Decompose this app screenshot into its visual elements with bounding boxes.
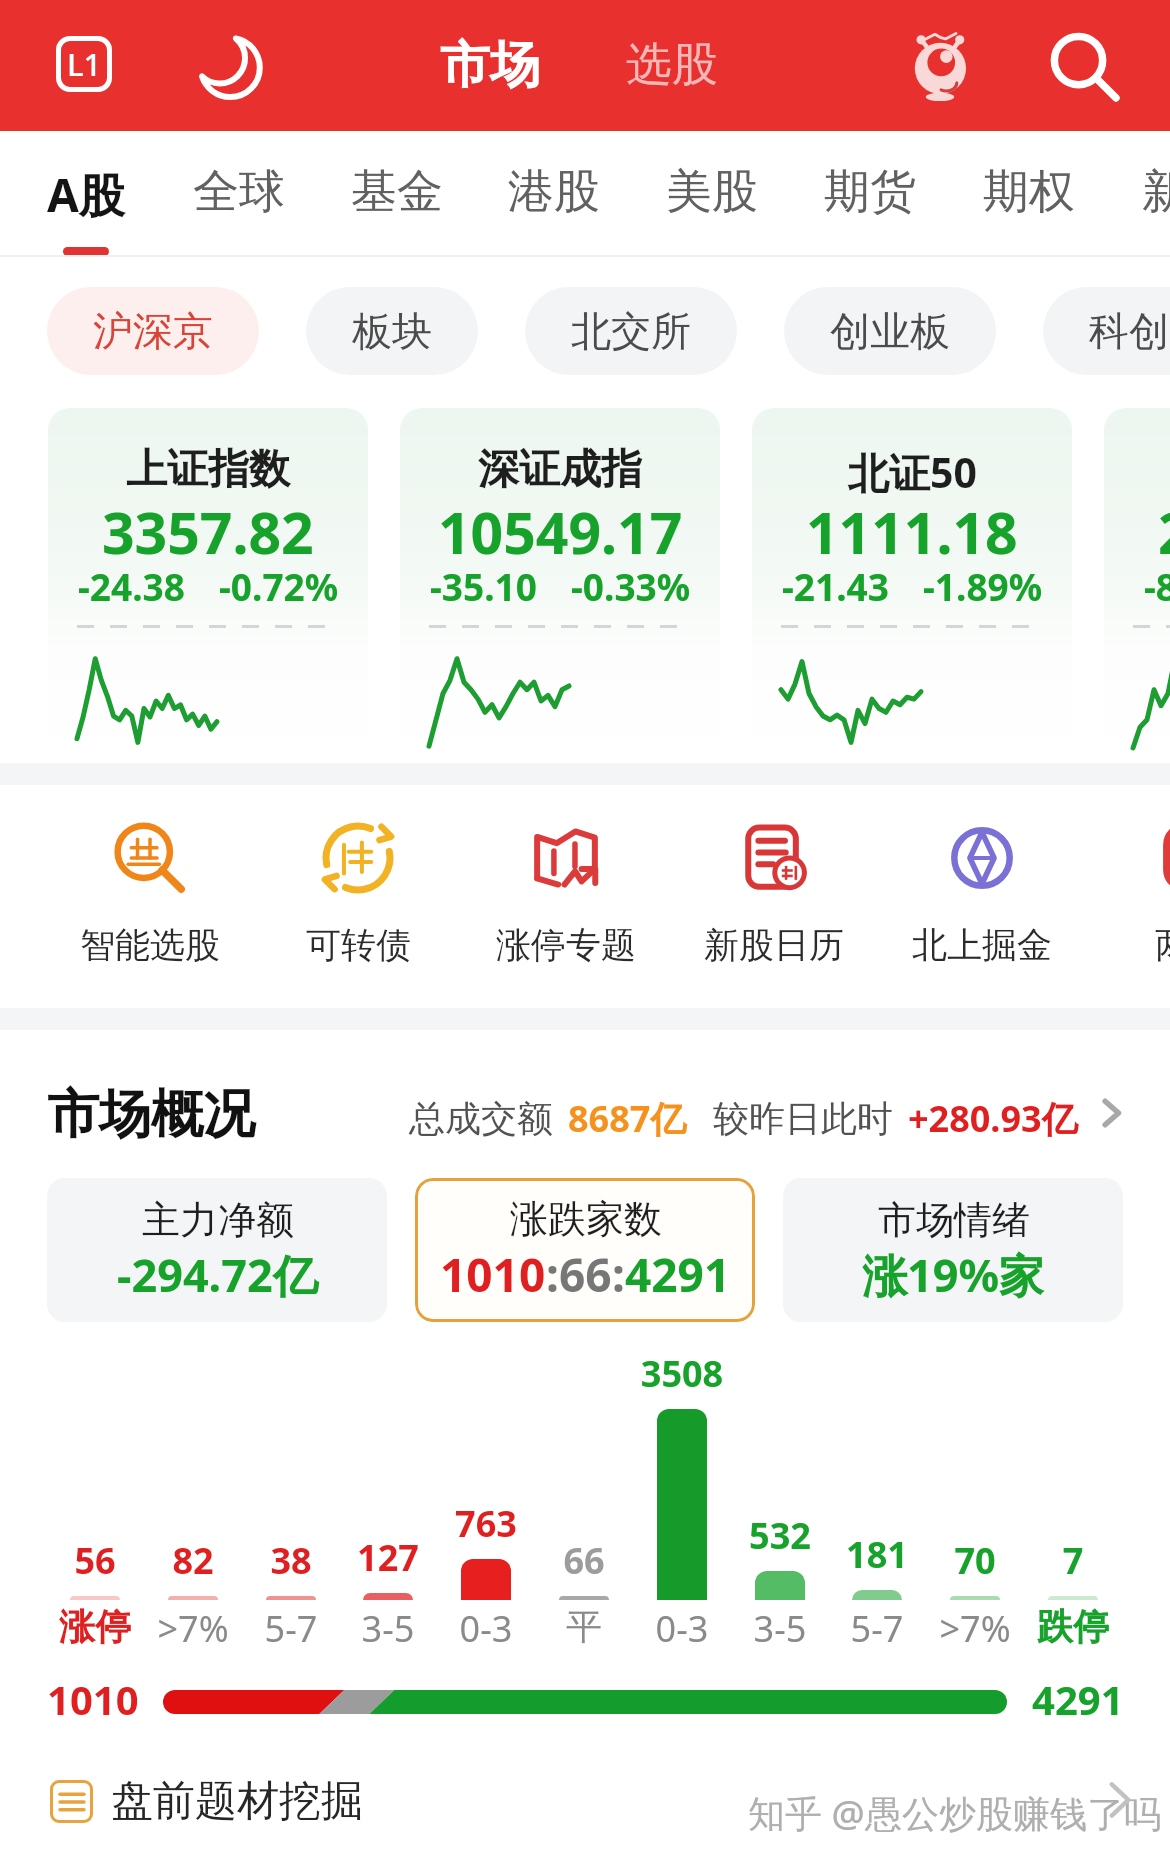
staticText: 70 bbox=[905, 1536, 1045, 1585]
staticText: 总成交额 bbox=[409, 1096, 553, 1141]
button[interactable]: 主力净额 bbox=[47, 1178, 387, 1322]
staticText: 532 bbox=[710, 1511, 850, 1560]
staticText: 板块 bbox=[352, 306, 432, 356]
button[interactable]: 创业板指 bbox=[1104, 408, 1170, 763]
button[interactable]: 港股 bbox=[490, 131, 618, 257]
button[interactable]: Search bbox=[1038, 20, 1132, 114]
staticText: 市场 bbox=[440, 34, 540, 97]
staticText: L1 bbox=[67, 43, 102, 85]
staticText: 1010 bbox=[47, 1672, 139, 1726]
staticText: 市场情绪 bbox=[878, 1196, 1030, 1244]
staticText: 期权 bbox=[983, 163, 1075, 221]
button[interactable]: 全球 bbox=[175, 131, 303, 257]
staticText: 涨停专题 bbox=[496, 923, 636, 967]
staticText: 智能选股 bbox=[80, 923, 220, 967]
staticText: -0.72% bbox=[219, 561, 339, 611]
staticText: 1111.18 bbox=[806, 493, 1018, 571]
staticText: 涨19%家 bbox=[862, 1244, 1045, 1305]
staticText: 新 bbox=[1142, 163, 1170, 221]
button[interactable]: 北上掘金 bbox=[878, 785, 1086, 1008]
button[interactable]: 美股 bbox=[648, 131, 776, 257]
staticText: 可转债 bbox=[306, 923, 411, 967]
button[interactable]: 市场概况 bbox=[0, 1060, 1170, 1160]
staticText: 上证指数 bbox=[126, 444, 290, 496]
staticText: 美股 bbox=[666, 163, 758, 221]
staticText: 港股 bbox=[508, 163, 600, 221]
button[interactable]: 市场 bbox=[424, 22, 556, 108]
staticText: 沪深京 bbox=[93, 306, 213, 356]
staticText: 8687亿 bbox=[568, 1094, 687, 1143]
button[interactable]: 两融 bbox=[1086, 785, 1170, 1008]
button[interactable]: Night mode bbox=[180, 18, 276, 114]
staticText: 较昨日此时 bbox=[713, 1096, 893, 1141]
staticText: 涨停 bbox=[25, 1604, 165, 1649]
button[interactable]: 期货 bbox=[806, 131, 934, 257]
button[interactable]: 新 bbox=[1124, 131, 1170, 257]
button[interactable]: 板块 bbox=[306, 287, 478, 375]
staticText: 跌停 bbox=[1003, 1604, 1143, 1649]
staticText: 1010 bbox=[440, 1243, 546, 1306]
button[interactable]: 可转债 bbox=[254, 785, 462, 1008]
staticText: : bbox=[546, 1243, 559, 1306]
button[interactable]: AI assistant bbox=[893, 18, 987, 112]
staticText: 5-7 bbox=[221, 1604, 361, 1653]
staticText: 5-7 bbox=[807, 1604, 947, 1653]
button[interactable]: 深证成指 bbox=[400, 408, 720, 763]
button[interactable]: 选股 bbox=[610, 24, 734, 106]
staticText: 创业板 bbox=[830, 306, 950, 356]
staticText: 选股 bbox=[626, 36, 718, 94]
staticText: 平 bbox=[514, 1604, 654, 1649]
staticText: 主力净额 bbox=[142, 1196, 294, 1244]
staticText: 3-5 bbox=[710, 1604, 850, 1653]
button[interactable]: 上证指数 bbox=[48, 408, 368, 763]
staticText: -21.43 bbox=[782, 561, 889, 611]
button[interactable]: 沪深京 bbox=[47, 287, 259, 375]
staticText: -8.03 bbox=[1144, 561, 1170, 611]
staticText: 4291 bbox=[625, 1243, 731, 1306]
staticText: -24.38 bbox=[78, 561, 185, 611]
staticText: 新股日历 bbox=[704, 923, 844, 967]
button[interactable]: 新股日历 bbox=[670, 785, 878, 1008]
staticText: -0.33% bbox=[571, 561, 691, 611]
staticText: -294.72亿 bbox=[117, 1244, 318, 1305]
staticText: 66 bbox=[559, 1243, 612, 1306]
staticText: +280.93亿 bbox=[908, 1094, 1078, 1143]
staticText: 7 bbox=[1003, 1536, 1143, 1585]
button[interactable]: A股 bbox=[29, 131, 143, 257]
button[interactable]: 北证50 bbox=[752, 408, 1072, 763]
staticText: 2128.47 bbox=[1158, 493, 1170, 571]
button[interactable]: 期权 bbox=[965, 131, 1093, 257]
staticText: 38 bbox=[221, 1536, 361, 1585]
button[interactable]: 涨跌家数 bbox=[415, 1178, 755, 1322]
staticText: 0-3 bbox=[416, 1604, 556, 1653]
staticText: 0-3 bbox=[612, 1604, 752, 1653]
button[interactable]: 科创 bbox=[1043, 287, 1170, 375]
staticText: 10549.17 bbox=[438, 493, 683, 571]
staticText: 市场概况 bbox=[47, 1082, 255, 1148]
staticText: 知乎 @愚公炒股赚钱了吗 bbox=[748, 1787, 1161, 1838]
button[interactable]: 北交所 bbox=[525, 287, 737, 375]
staticText: 82 bbox=[123, 1536, 263, 1585]
staticText: 56 bbox=[25, 1536, 165, 1585]
button[interactable]: 涨停专题 bbox=[462, 785, 670, 1008]
staticText: 127 bbox=[318, 1533, 458, 1582]
button[interactable]: 创业板 bbox=[784, 287, 996, 375]
staticText: 北上掘金 bbox=[912, 923, 1052, 967]
staticText: 两融 bbox=[1155, 923, 1170, 967]
button[interactable]: L1 quote level bbox=[36, 16, 132, 112]
button[interactable]: 市场情绪 bbox=[783, 1178, 1123, 1322]
button[interactable]: 基金 bbox=[333, 131, 461, 257]
button[interactable]: 盘前题材挖掘 bbox=[50, 1770, 363, 1832]
staticText: : bbox=[612, 1243, 625, 1306]
staticText: 深证成指 bbox=[478, 444, 642, 496]
staticText: 3-5 bbox=[318, 1604, 458, 1653]
staticText: >7% bbox=[123, 1604, 263, 1653]
staticText: -35.10 bbox=[430, 561, 537, 611]
staticText: >7% bbox=[905, 1604, 1045, 1653]
staticText: 3357.82 bbox=[102, 493, 314, 571]
staticText: 盘前题材挖掘 bbox=[111, 1775, 363, 1828]
button[interactable]: 智能选股 bbox=[46, 785, 254, 1008]
staticText: 3508 bbox=[612, 1349, 752, 1398]
staticText: 66 bbox=[514, 1536, 654, 1585]
staticText: A股 bbox=[47, 163, 125, 226]
